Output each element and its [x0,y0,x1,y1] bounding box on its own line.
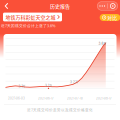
staticText: 2021-08-17 [96,97,112,100]
staticText: 近7天成交均价走势以及成交价格变化 [27,107,93,113]
staticText: 地铁万科彩虹天空之城 [6,13,56,20]
button[interactable]: 对比 [100,14,120,21]
button[interactable]: Close [108,2,118,10]
staticText: 对比 [107,14,117,21]
staticText: 3.2万 [70,80,78,84]
staticText: 历史报告 [50,2,70,9]
staticText: 3.1万 [45,84,52,88]
staticText: 2021-06-03 [8,97,25,100]
staticText: 2021-06-17 [38,97,54,100]
button[interactable]: Back [0,0,12,11]
button[interactable]: 地铁万科彩虹天空之城 [3,13,62,21]
staticText: ·近7天的成交价合计上涨了3.6% [0,23,55,28]
staticText: 3.6万 [98,42,106,46]
staticText: 3.1万 [18,84,25,88]
staticText: 2021-07-10 [67,97,83,100]
button[interactable]: More [97,2,107,10]
